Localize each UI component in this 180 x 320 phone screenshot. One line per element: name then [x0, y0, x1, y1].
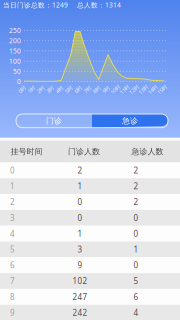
staticText: 8时	[93, 86, 101, 93]
staticText: 总人数：1314	[77, 1, 121, 9]
staticText: 6	[133, 291, 138, 302]
staticText: 6	[10, 260, 15, 270]
staticText: 102	[72, 276, 87, 286]
staticText: 5	[10, 244, 15, 255]
staticText: 200	[9, 36, 21, 45]
staticText: 0	[10, 165, 15, 176]
button[interactable]: 急诊	[92, 114, 168, 128]
staticText: 50	[13, 67, 21, 76]
staticText: 13时	[138, 86, 149, 93]
staticText: 4	[133, 307, 138, 318]
staticText: 1	[10, 181, 15, 191]
staticText: 0	[133, 260, 138, 270]
staticText: 1	[133, 244, 138, 255]
staticText: 7	[10, 276, 15, 286]
staticText: 2	[133, 181, 138, 191]
staticText: 3时	[46, 86, 54, 93]
staticText: 100	[9, 57, 21, 66]
staticText: 0	[17, 77, 21, 86]
staticText: 5	[133, 276, 138, 286]
staticText: 1	[77, 181, 82, 191]
staticText: 2	[133, 197, 138, 207]
staticText: 7时	[83, 86, 91, 93]
staticText: 4时	[55, 86, 63, 93]
staticText: 0	[133, 228, 138, 239]
staticText: 242	[72, 307, 87, 318]
staticText: 9	[77, 260, 82, 270]
staticText: 4	[10, 228, 15, 239]
staticText: 门诊	[46, 116, 62, 126]
staticText: 8	[10, 291, 15, 302]
staticText: 2时	[37, 86, 45, 93]
staticText: 急诊	[122, 116, 138, 126]
staticText: 2	[77, 165, 82, 176]
staticText: 1	[77, 228, 82, 239]
staticText: 0	[77, 197, 82, 207]
staticText: 12时	[128, 86, 139, 93]
staticText: 15时	[156, 86, 167, 93]
staticText: 250	[9, 26, 21, 35]
staticText: 11时	[119, 86, 130, 93]
staticText: 5时	[65, 86, 73, 93]
staticText: 247	[72, 291, 87, 302]
staticText: 挂号时间	[10, 147, 42, 156]
staticText: 0时	[18, 86, 26, 93]
staticText: 3	[10, 212, 15, 223]
staticText: 1时	[27, 86, 35, 93]
button[interactable]: 门诊	[16, 114, 92, 128]
staticText: 门诊人数	[68, 147, 100, 156]
staticText: 9时	[102, 86, 110, 93]
staticText: 急诊人数	[131, 147, 163, 156]
staticText: 9	[10, 307, 15, 318]
staticText: 10时	[110, 86, 121, 93]
staticText: 2	[10, 197, 15, 207]
staticText: 0	[77, 212, 82, 223]
staticText: 当日门诊总数：1249	[3, 1, 68, 9]
staticText: 0	[133, 212, 138, 223]
staticText: 14时	[147, 86, 158, 93]
staticText: 150	[9, 46, 21, 55]
staticText: 2	[133, 165, 138, 176]
staticText: 6时	[74, 86, 82, 93]
staticText: 3	[77, 244, 82, 255]
